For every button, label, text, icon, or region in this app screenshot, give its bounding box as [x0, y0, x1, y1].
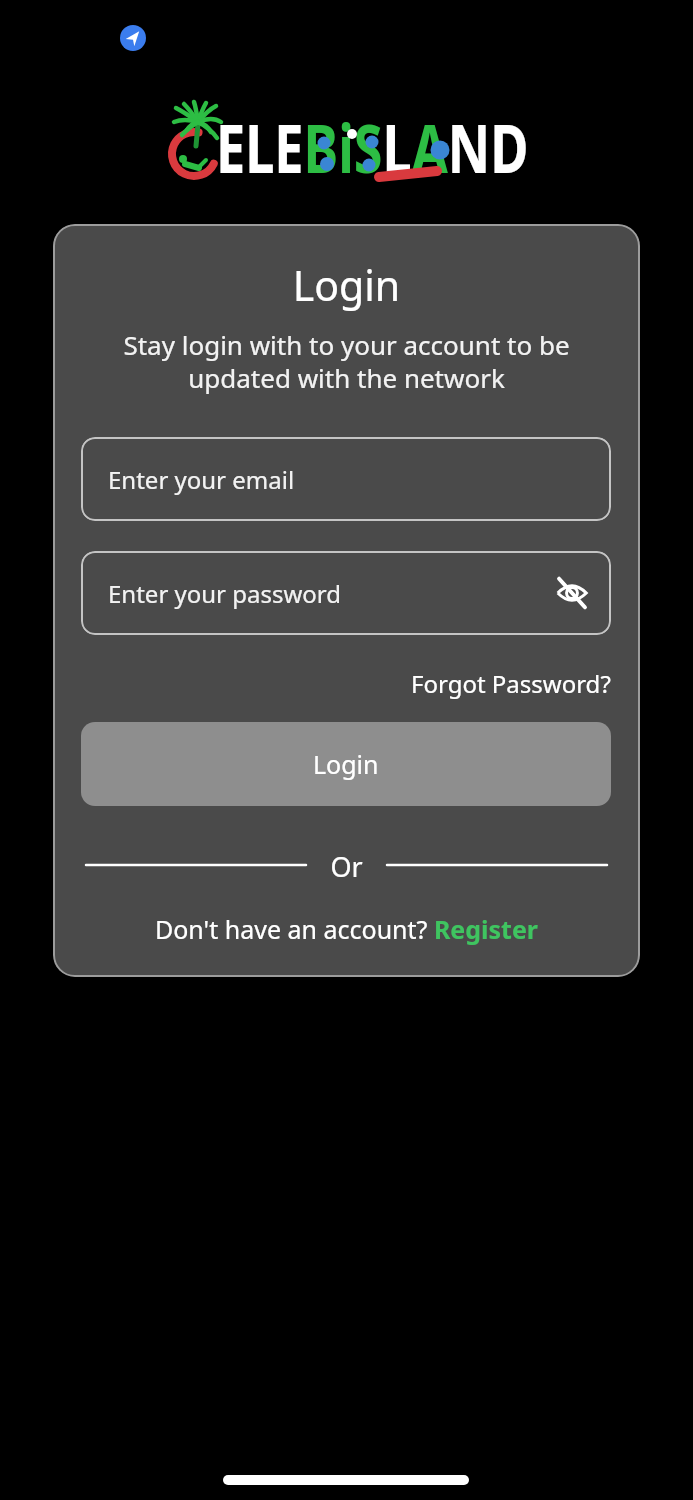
staticText: Login: [53, 257, 640, 313]
button[interactable]: Don't have an account? Register: [53, 912, 640, 946]
button[interactable]: Enter your password: [81, 551, 611, 635]
staticText: Stay login with to your account to be up…: [53, 327, 640, 396]
staticText: Enter your email: [108, 463, 295, 496]
button[interactable]: [555, 576, 589, 610]
staticText: Enter your password: [108, 577, 342, 610]
button[interactable]: Forgot Password?: [411, 667, 611, 700]
button[interactable]: Login: [81, 722, 611, 806]
staticText: Or: [53, 848, 640, 885]
staticText: ELEBiSLAND: [216, 102, 529, 192]
staticText: Login: [313, 747, 379, 781]
button[interactable]: [120, 25, 146, 51]
button[interactable]: Enter your email: [81, 437, 611, 521]
